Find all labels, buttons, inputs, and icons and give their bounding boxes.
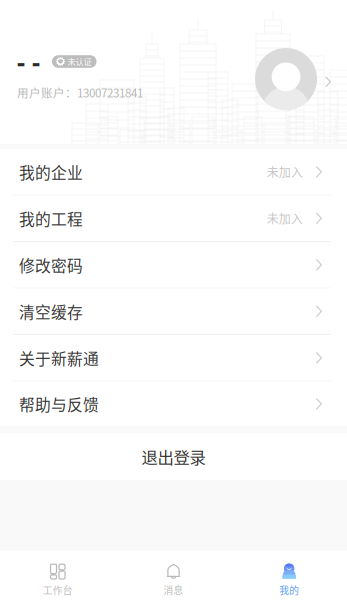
staticText: 未认证 [67,55,91,67]
staticText: 我的企业 [19,160,83,183]
button[interactable]: 我的 [231,551,347,600]
staticText: 退出登录 [141,445,205,468]
button[interactable]: 清空缓存 [0,288,347,335]
button[interactable]: 退出登录 [0,433,347,480]
staticText: 我的工程 [19,207,83,230]
staticText: - - [17,45,40,78]
staticText: 清空缓存 [19,300,83,323]
button[interactable]: 修改密码 [0,242,347,288]
staticText: 未加入 [267,163,303,181]
staticText: 工作台 [43,583,73,597]
staticText: 帮助与反馈 [19,392,99,415]
button[interactable]: 关于新薪通 [0,335,347,381]
button[interactable]: 消息 [116,551,231,600]
staticText: 关于新薪通 [19,346,99,369]
button[interactable]: 我的企业 [0,149,347,195]
button[interactable]: 我的工程 [0,195,347,242]
staticText: 未加入 [267,210,303,227]
staticText: 我的 [279,583,299,597]
button[interactable]: 帮助与反馈 [0,381,347,426]
button[interactable]: - - [0,0,347,144]
staticText: 消息 [163,583,183,597]
button[interactable]: 工作台 [0,551,116,600]
staticText: 用户账户：13007231841 [17,84,143,101]
staticText: 修改密码 [19,253,83,276]
